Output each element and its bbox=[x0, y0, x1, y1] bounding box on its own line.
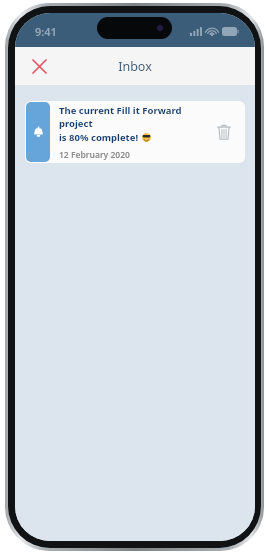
staticText: 12 February 2020 bbox=[59, 149, 130, 161]
staticText: Inbox bbox=[118, 58, 152, 75]
button[interactable]: Close bbox=[25, 52, 53, 80]
staticText: 9:41 bbox=[35, 24, 57, 39]
staticText: is 80% complete! bbox=[59, 131, 139, 144]
staticText: The current Fill it Forward project bbox=[59, 104, 207, 130]
button[interactable]: The current Fill it Forward project bbox=[25, 101, 245, 163]
button[interactable]: Delete bbox=[211, 119, 237, 145]
